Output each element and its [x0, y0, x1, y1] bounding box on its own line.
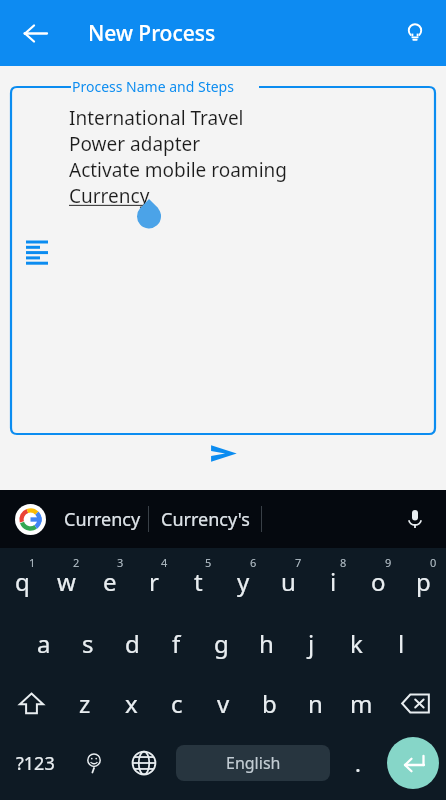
button[interactable]: k	[334, 612, 379, 674]
staticText: r	[149, 565, 159, 598]
staticText: ?123	[16, 751, 55, 776]
button[interactable]: m	[338, 674, 384, 732]
button[interactable]: n	[292, 674, 338, 732]
staticText: h	[259, 627, 274, 660]
button[interactable]: i	[311, 550, 356, 612]
button[interactable]: l	[379, 612, 424, 674]
staticText: m	[350, 687, 373, 720]
button[interactable]: Back	[12, 10, 58, 56]
button[interactable]: Enter	[387, 737, 439, 789]
button[interactable]: Emoji	[70, 732, 118, 794]
staticText: 2	[73, 555, 80, 570]
staticText: a	[37, 627, 51, 660]
button[interactable]: Send	[198, 428, 248, 478]
staticText: g	[214, 627, 229, 660]
staticText: 0	[430, 555, 437, 570]
button[interactable]: v	[200, 674, 246, 732]
button[interactable]: English	[176, 745, 330, 781]
staticText: p	[416, 565, 431, 598]
staticText: i	[330, 565, 337, 598]
staticText: z	[79, 687, 91, 720]
button[interactable]: j	[289, 612, 334, 674]
button[interactable]: Currency's	[149, 496, 261, 542]
staticText: y	[237, 565, 250, 598]
staticText: u	[281, 565, 296, 598]
staticText: English	[226, 752, 281, 774]
staticText: .	[355, 748, 361, 778]
staticText: x	[125, 687, 138, 720]
staticText: f	[172, 627, 181, 660]
button[interactable]: g	[199, 612, 244, 674]
button[interactable]: u	[266, 550, 311, 612]
button[interactable]: c	[154, 674, 200, 732]
button[interactable]: Change language	[118, 732, 170, 794]
staticText: e	[103, 565, 117, 598]
button[interactable]: Backspace	[384, 674, 446, 732]
staticText: Power adapter	[69, 131, 201, 157]
button[interactable]: w	[44, 550, 88, 612]
staticText: s	[82, 627, 94, 660]
button[interactable]: Tips	[392, 10, 438, 56]
staticText: q	[15, 565, 30, 598]
button[interactable]: e	[88, 550, 132, 612]
staticText: Currency	[64, 507, 141, 532]
staticText: 4	[161, 555, 168, 570]
staticText: New Process	[88, 19, 216, 48]
button[interactable]: Shift	[0, 674, 62, 732]
staticText: v	[217, 687, 230, 720]
button[interactable]: o	[356, 550, 401, 612]
button[interactable]: x	[108, 674, 154, 732]
staticText: d	[125, 627, 140, 660]
button[interactable]: a	[22, 612, 66, 674]
button[interactable]: Voice input	[394, 498, 436, 540]
staticText: 6	[250, 555, 257, 570]
staticText: Process Name and Steps	[72, 77, 234, 96]
staticText: Activate mobile roaming	[69, 157, 287, 183]
button[interactable]: d	[110, 612, 154, 674]
staticText: o	[371, 565, 386, 598]
staticText: 5	[205, 555, 212, 570]
staticText: 9	[385, 555, 392, 570]
button[interactable]: z	[62, 674, 108, 732]
button[interactable]: q	[0, 550, 44, 612]
staticText: Currency's	[161, 507, 250, 532]
button[interactable]: s	[66, 612, 110, 674]
staticText: t	[194, 565, 203, 598]
button[interactable]: Currency	[56, 496, 148, 542]
staticText: Currency	[69, 183, 150, 209]
staticText: n	[308, 687, 323, 720]
button[interactable]: b	[246, 674, 292, 732]
staticText: 8	[340, 555, 347, 570]
button[interactable]: y	[221, 550, 266, 612]
staticText: j	[308, 627, 315, 660]
button[interactable]: r	[132, 550, 176, 612]
button[interactable]: t	[176, 550, 221, 612]
button[interactable]: Google search	[12, 501, 48, 537]
button[interactable]: p	[401, 550, 446, 612]
staticText: 7	[295, 555, 302, 570]
button[interactable]: ?123	[0, 732, 70, 794]
staticText: k	[350, 627, 363, 660]
staticText: 3	[117, 555, 124, 570]
staticText: b	[262, 687, 277, 720]
staticText: International Travel	[69, 105, 244, 131]
staticText: c	[171, 687, 183, 720]
staticText: l	[398, 627, 405, 660]
staticText: 1	[29, 555, 36, 570]
button[interactable]: h	[244, 612, 289, 674]
button[interactable]: .	[336, 732, 380, 794]
button[interactable]: f	[154, 612, 199, 674]
staticText: w	[57, 565, 76, 598]
